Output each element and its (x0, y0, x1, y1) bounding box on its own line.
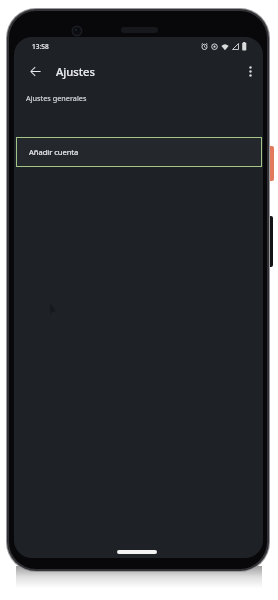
staticText: Ajustes generales (26, 93, 87, 103)
button[interactable]: Añadir cuenta (16, 137, 262, 167)
button[interactable] (14, 55, 56, 88)
staticText: 13:58 (32, 42, 49, 51)
staticText: Ajustes (56, 64, 95, 79)
staticText: Añadir cuenta (29, 147, 79, 157)
button[interactable] (237, 55, 263, 88)
